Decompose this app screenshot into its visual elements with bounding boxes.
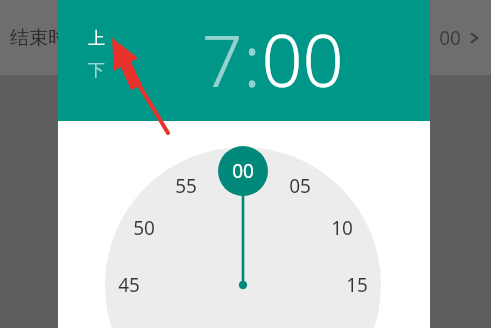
button[interactable]: 下 [86, 58, 107, 83]
staticText: 结束时间 [10, 26, 86, 50]
button[interactable]: 05 [281, 173, 319, 199]
button[interactable]: 45 [110, 272, 148, 298]
button[interactable]: 10 [323, 215, 361, 241]
staticText: 45 [118, 272, 140, 298]
staticText: 7 [201, 10, 243, 108]
button[interactable]: 00 [224, 158, 262, 184]
button[interactable]: 15 [338, 272, 376, 298]
staticText: 下 [88, 60, 105, 81]
staticText: 00 [439, 25, 461, 51]
button[interactable]: 上 [86, 26, 107, 51]
staticText: 15 [346, 272, 368, 298]
button[interactable]: 50 [125, 215, 163, 241]
button[interactable]: Minute dial [58, 121, 430, 328]
button[interactable]: 7 [201, 10, 243, 108]
staticText: 上 [88, 28, 105, 49]
staticText: 55 [175, 173, 197, 199]
staticText: : [243, 10, 261, 108]
staticText: 10 [331, 215, 353, 241]
button[interactable]: 55 [167, 173, 205, 199]
staticText: 05 [289, 173, 311, 199]
staticText: 50 [133, 215, 155, 241]
button[interactable]: 结束时间 [0, 0, 491, 75]
button[interactable]: 00 [261, 10, 344, 108]
staticText: 00 [232, 158, 254, 184]
staticText: 00 [261, 10, 344, 108]
